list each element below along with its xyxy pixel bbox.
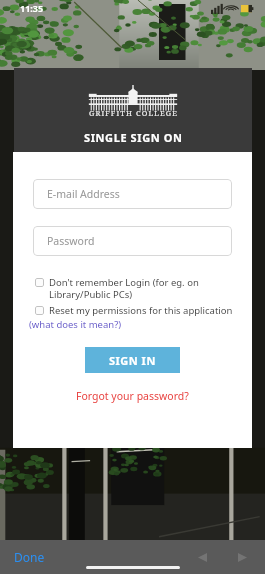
button[interactable]: Back bbox=[193, 548, 211, 566]
staticText: Reset my permissions for this applicatio… bbox=[49, 304, 233, 317]
staticText: SIGN IN bbox=[109, 353, 156, 368]
staticText: Done bbox=[14, 549, 45, 565]
staticText: Don't remember Login (for eg. on Library… bbox=[49, 276, 199, 301]
button[interactable]: Don't remember Login (for eg. on Library… bbox=[35, 276, 240, 301]
staticText: (what does it mean?) bbox=[29, 318, 122, 331]
staticText: Forgot your password? bbox=[76, 389, 189, 403]
button[interactable]: Done bbox=[8, 545, 51, 569]
button[interactable]: Forward bbox=[233, 548, 251, 566]
button[interactable]: Password bbox=[33, 226, 232, 256]
button[interactable]: SIGN IN bbox=[85, 347, 180, 373]
button[interactable]: E-mail Address bbox=[33, 179, 232, 209]
button[interactable]: Reset my permissions for this applicatio… bbox=[35, 304, 240, 317]
button[interactable]: Forgot your password? bbox=[70, 387, 195, 405]
staticText: E-mail Address bbox=[47, 187, 120, 201]
staticText: SINGLE SIGN ON bbox=[84, 130, 183, 145]
staticText: Password bbox=[47, 234, 95, 248]
staticText: GRIFFITH COLLEGE bbox=[89, 108, 178, 118]
staticText: 11:35 bbox=[20, 2, 44, 14]
button[interactable]: (what does it mean?) bbox=[29, 317, 122, 331]
